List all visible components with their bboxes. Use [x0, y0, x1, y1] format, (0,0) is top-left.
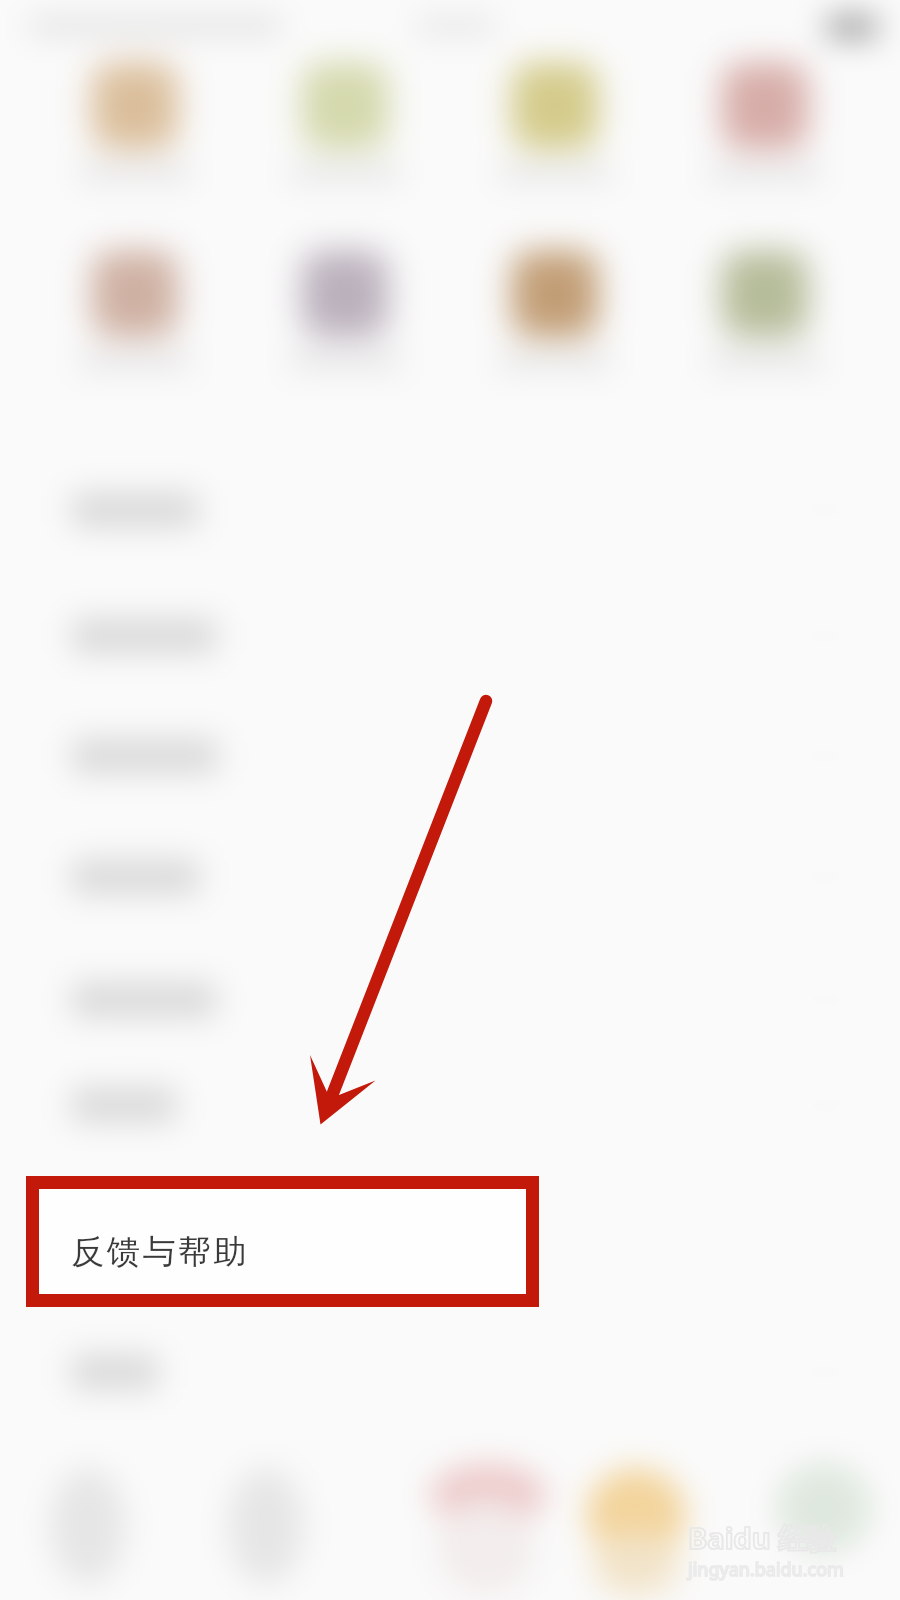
- button[interactable]: App shortcut 5: [65, 240, 205, 380]
- staticText: 存储空间管理: [68, 984, 260, 1024]
- button[interactable]: 账号与安全: [0, 454, 900, 566]
- button[interactable]: App shortcut 4: [695, 52, 835, 192]
- button[interactable]: 消息通知设置: [0, 580, 900, 692]
- button[interactable]: Dock app 3: [418, 1460, 558, 1600]
- staticText: jingyan.baidu.com: [688, 1557, 844, 1582]
- button[interactable]: App shortcut 8: [695, 240, 835, 380]
- button[interactable]: Dock app 5: [762, 1460, 900, 1600]
- button[interactable]: App shortcut 1: [65, 52, 205, 192]
- button[interactable]: Dock app 1: [18, 1460, 158, 1600]
- button[interactable]: App shortcut 2: [275, 52, 415, 192]
- staticText: 隐私与权限设置: [68, 740, 292, 780]
- button[interactable]: Dock app 4: [566, 1460, 706, 1600]
- staticText: Baidu 经验: [688, 1518, 837, 1558]
- staticText: 账号与安全: [68, 494, 228, 534]
- button[interactable]: 退出登录: [0, 1316, 900, 1428]
- staticText: 关于我们: [68, 1089, 196, 1129]
- button[interactable]: Dock app 2: [196, 1460, 336, 1600]
- staticText: 退出登录: [68, 1356, 196, 1396]
- button[interactable]: 存储空间管理: [0, 944, 900, 1056]
- button[interactable]: 通用设置: [0, 821, 900, 933]
- staticText: 消息通知设置: [68, 620, 260, 660]
- button[interactable]: App shortcut 6: [275, 240, 415, 380]
- button[interactable]: App shortcut 3: [485, 52, 625, 192]
- staticText: 反馈与帮助: [70, 1231, 248, 1273]
- button[interactable]: 隐私与权限设置: [0, 700, 900, 812]
- button[interactable]: 关于我们: [0, 1049, 900, 1161]
- button[interactable]: 反馈与帮助: [26, 1176, 539, 1307]
- button[interactable]: App shortcut 7: [485, 240, 625, 380]
- staticText: 通用设置: [68, 861, 196, 901]
